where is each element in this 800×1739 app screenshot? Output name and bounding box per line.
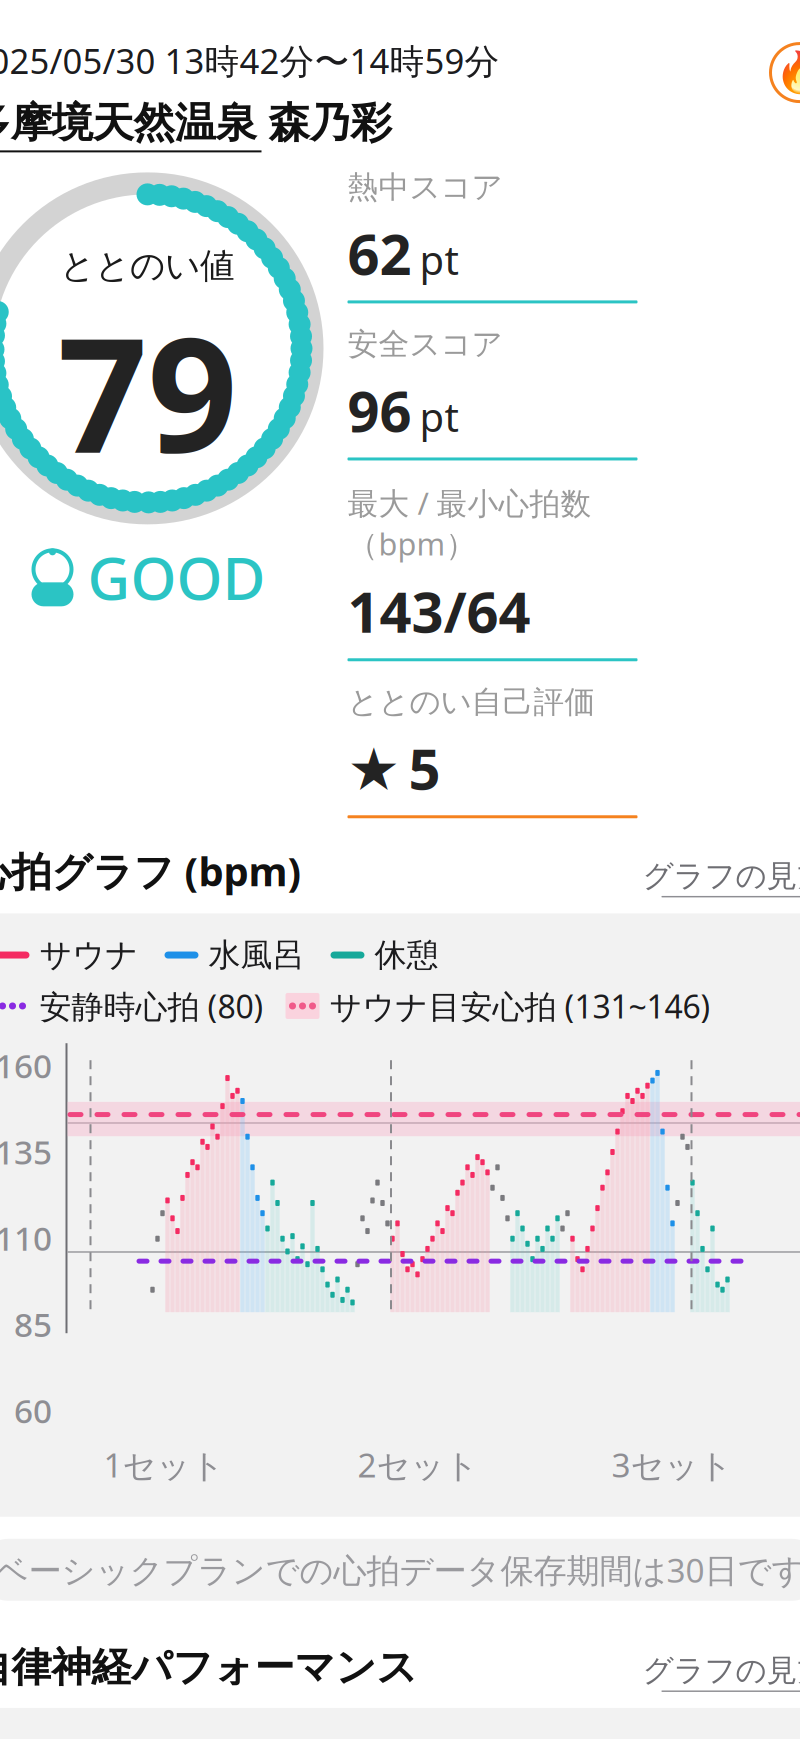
button[interactable]: サウナ熱量: [768, 38, 800, 108]
staticText: pt: [419, 233, 458, 286]
staticText: ★: [347, 736, 400, 803]
staticText: グラフの見方: [642, 1652, 800, 1689]
staticText: 135: [0, 1129, 52, 1174]
staticText: ととのい値: [60, 245, 235, 287]
staticText: 2セット: [357, 1442, 478, 1487]
staticText: 2025/05/30 13時42分〜14時59分: [0, 38, 499, 84]
staticText: サウナ: [29, 935, 138, 975]
staticText: 自律神経パフォーマンス: [0, 1643, 417, 1692]
staticText: GOOD: [87, 538, 265, 616]
staticText: 最大 / 最小心拍数（bpm）: [347, 482, 591, 564]
button[interactable]: グラフの見方: [642, 1652, 800, 1692]
staticText: 85: [14, 1302, 52, 1346]
staticText: ととのい自己評価: [347, 683, 595, 721]
staticText: ベーシックプランでの心拍データ保存期間は30日です: [0, 1548, 800, 1592]
staticText: 🔥: [774, 50, 800, 95]
staticText: 96: [347, 373, 411, 447]
staticText: pt: [419, 390, 458, 443]
staticText: 79: [57, 287, 237, 496]
staticText: 62: [347, 216, 411, 290]
staticText: 110: [0, 1216, 52, 1260]
staticText: 心拍グラフ (bpm): [0, 844, 301, 897]
button[interactable]: グラフの見方: [642, 857, 800, 897]
staticText: 安静時心拍 (80): [29, 985, 263, 1027]
staticText: 休憩: [364, 935, 438, 975]
staticText: 60: [14, 1388, 52, 1433]
staticText: 160: [0, 1043, 52, 1087]
staticText: サウナ目安心拍 (131~146): [319, 985, 710, 1027]
staticText: 3セット: [611, 1442, 732, 1487]
staticText: 5: [408, 731, 440, 805]
staticText: グラフの見方: [642, 857, 800, 895]
staticText: 143/64: [347, 574, 530, 648]
staticText: 1セット: [103, 1442, 224, 1487]
staticText: 水風呂: [198, 935, 304, 975]
staticText: 多摩境天然温泉 森乃彩: [0, 98, 391, 148]
staticText: 熱中スコア: [347, 168, 502, 206]
staticText: 安全スコア: [347, 325, 502, 363]
